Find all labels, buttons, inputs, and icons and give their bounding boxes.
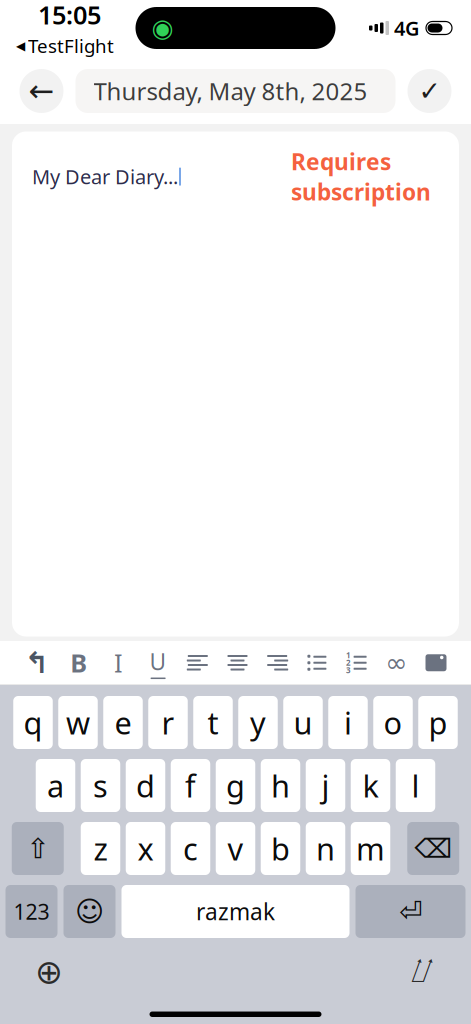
button[interactable]: Insert link bbox=[383, 645, 409, 681]
button[interactable]: Align left bbox=[185, 645, 211, 681]
staticText: g bbox=[226, 765, 245, 806]
button[interactable]: i bbox=[328, 696, 368, 749]
staticText: ⌫ bbox=[414, 833, 452, 864]
button[interactable]: a bbox=[36, 759, 75, 812]
button[interactable]: Thursday, May 8th, 2025 bbox=[75, 69, 395, 113]
staticText: ☺ bbox=[75, 896, 104, 927]
button[interactable]: Undo bbox=[22, 645, 52, 681]
staticText: ◀ bbox=[16, 39, 25, 53]
staticText: Requires subscription bbox=[291, 146, 431, 207]
button[interactable]: d bbox=[126, 759, 165, 812]
button[interactable]: Shift bbox=[12, 822, 64, 875]
staticText: Thursday, May 8th, 2025 bbox=[93, 75, 367, 107]
staticText: i bbox=[344, 702, 352, 743]
staticText: ⌰ bbox=[411, 956, 433, 988]
staticText: ← bbox=[28, 74, 54, 108]
button[interactable]: Return bbox=[355, 885, 465, 938]
staticText: ∞ bbox=[385, 648, 407, 678]
button[interactable]: b bbox=[261, 822, 300, 875]
button[interactable]: Align right bbox=[264, 645, 290, 681]
staticText: y bbox=[250, 702, 266, 743]
button[interactable]: z bbox=[81, 822, 120, 875]
staticText: w bbox=[66, 702, 90, 743]
staticText: x bbox=[137, 828, 153, 869]
staticText: ✓ bbox=[418, 76, 440, 106]
staticText: U bbox=[150, 646, 167, 676]
staticText: r bbox=[161, 702, 174, 743]
button[interactable]: q bbox=[13, 696, 53, 749]
staticText: h bbox=[271, 765, 290, 806]
button[interactable]: j bbox=[306, 759, 345, 812]
staticText: q bbox=[23, 702, 42, 743]
button[interactable]: Dictate bbox=[405, 955, 439, 989]
staticText: ◉ bbox=[151, 14, 173, 42]
button[interactable]: w bbox=[58, 696, 98, 749]
button[interactable]: g bbox=[216, 759, 255, 812]
button[interactable]: Numbered list bbox=[344, 645, 370, 681]
button[interactable]: Delete bbox=[407, 822, 459, 875]
button[interactable]: f bbox=[171, 759, 210, 812]
staticText: j bbox=[321, 765, 329, 806]
button[interactable]: o bbox=[373, 696, 413, 749]
button[interactable]: Align center bbox=[224, 645, 250, 681]
staticText: s bbox=[93, 765, 108, 806]
staticText: c bbox=[183, 828, 198, 869]
button[interactable]: e bbox=[103, 696, 143, 749]
staticText: n bbox=[316, 828, 335, 869]
staticText: 4G bbox=[394, 15, 420, 41]
button[interactable]: Insert image bbox=[423, 645, 449, 681]
button[interactable]: s bbox=[81, 759, 120, 812]
staticText: f bbox=[185, 765, 196, 806]
button[interactable]: Save bbox=[407, 69, 451, 113]
staticText: k bbox=[362, 765, 378, 806]
staticText: t bbox=[207, 702, 218, 743]
staticText: m bbox=[356, 828, 385, 869]
staticText: d bbox=[136, 765, 155, 806]
button[interactable]: Italic bbox=[105, 645, 131, 681]
staticText: B bbox=[70, 646, 87, 679]
button[interactable]: l bbox=[396, 759, 435, 812]
button[interactable]: Emoji bbox=[63, 885, 115, 938]
staticText: 1 bbox=[346, 650, 351, 660]
staticText: b bbox=[271, 828, 290, 869]
staticText: ⇧ bbox=[26, 833, 49, 864]
staticText: l bbox=[411, 765, 419, 806]
button[interactable]: v bbox=[216, 822, 255, 875]
button[interactable]: Underline bbox=[145, 645, 171, 681]
staticText: razmak bbox=[196, 896, 275, 926]
button[interactable]: Change keyboard bbox=[32, 955, 66, 989]
staticText: ↰ bbox=[24, 646, 49, 679]
button[interactable]: p bbox=[418, 696, 458, 749]
staticText: ⏎ bbox=[399, 896, 422, 927]
staticText: 15:05 bbox=[38, 0, 101, 31]
staticText: a bbox=[47, 765, 64, 806]
button[interactable]: k bbox=[351, 759, 390, 812]
button[interactable]: y bbox=[238, 696, 278, 749]
staticText: v bbox=[227, 828, 243, 869]
button[interactable]: Bulleted list bbox=[304, 645, 330, 681]
button[interactable]: h bbox=[261, 759, 300, 812]
button[interactable]: n bbox=[306, 822, 345, 875]
staticText: I bbox=[114, 646, 123, 679]
button[interactable]: c bbox=[171, 822, 210, 875]
staticText: z bbox=[93, 828, 107, 869]
button[interactable]: u bbox=[283, 696, 323, 749]
button[interactable]: Back bbox=[19, 69, 63, 113]
staticText: e bbox=[114, 702, 131, 743]
staticText: p bbox=[428, 702, 447, 743]
button[interactable]: x bbox=[126, 822, 165, 875]
button[interactable]: r bbox=[148, 696, 188, 749]
staticText: 123 bbox=[13, 897, 49, 926]
staticText: o bbox=[383, 702, 402, 743]
staticText: TestFlight bbox=[28, 33, 114, 58]
staticText: 3 bbox=[346, 665, 351, 675]
staticText: u bbox=[293, 702, 312, 743]
staticText: 2 bbox=[346, 657, 351, 668]
staticText: ⊕ bbox=[35, 953, 63, 991]
staticText: My Dear Diary... bbox=[32, 163, 178, 190]
button[interactable]: Bold bbox=[66, 645, 92, 681]
button[interactable]: t bbox=[193, 696, 233, 749]
button[interactable]: razmak bbox=[121, 885, 349, 938]
button[interactable]: 123 bbox=[5, 885, 57, 938]
button[interactable]: m bbox=[351, 822, 390, 875]
